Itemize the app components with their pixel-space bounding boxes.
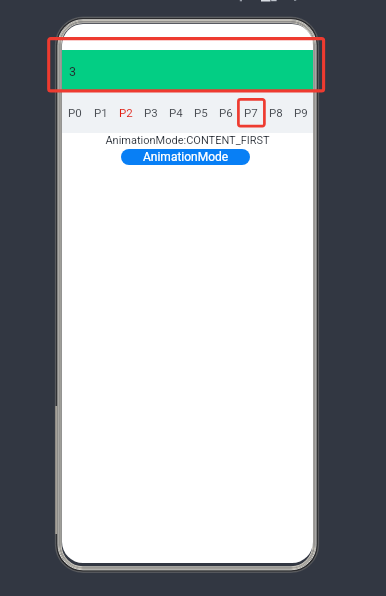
staticText: P3 (144, 106, 158, 119)
staticText: AnimationMode (143, 150, 229, 164)
button[interactable]: P1 (88, 90, 113, 133)
staticText: P1 (94, 106, 108, 119)
staticText: 3 (69, 64, 77, 79)
button[interactable]: 3 (62, 50, 313, 90)
staticText: P4 (169, 106, 183, 119)
button[interactable]: P0 (62, 90, 88, 133)
button[interactable]: P2 (113, 90, 138, 133)
button[interactable]: P8 (263, 90, 288, 133)
staticText: P7 (244, 106, 258, 119)
staticText: P9 (294, 106, 308, 119)
button[interactable]: P9 (288, 90, 313, 133)
button[interactable]: P3 (138, 90, 163, 133)
button[interactable]: P6 (213, 90, 238, 133)
button[interactable]: AnimationMode (121, 149, 250, 165)
staticText: P0 (68, 106, 82, 119)
staticText: P2 (119, 106, 133, 119)
button[interactable]: P7 (238, 90, 263, 133)
button[interactable]: P5 (188, 90, 213, 133)
staticText: P8 (269, 106, 283, 119)
staticText: AnimationMode:CONTENT_FIRST (62, 134, 313, 147)
staticText: P6 (219, 106, 233, 119)
staticText: P5 (194, 106, 208, 119)
button[interactable]: P4 (163, 90, 188, 133)
